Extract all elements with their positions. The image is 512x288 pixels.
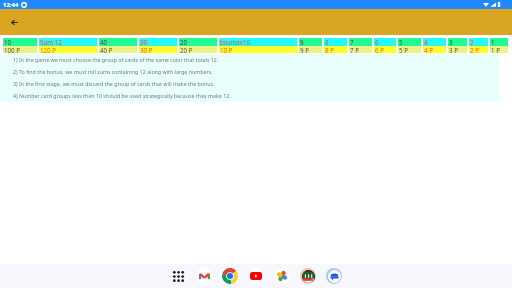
staticText: 4 P [424, 46, 433, 53]
staticText: 7 [350, 38, 354, 46]
staticText: 10 P [220, 46, 233, 53]
staticText: 2 P [470, 46, 479, 53]
staticText: 4 [424, 38, 428, 46]
button[interactable]: 4 [423, 38, 446, 53]
button[interactable]: Chrome [222, 268, 238, 284]
staticText: 5 [399, 38, 403, 46]
staticText: Sum 12 [40, 38, 62, 46]
button[interactable]: Account [300, 268, 316, 284]
staticText: 20 [180, 38, 188, 46]
button[interactable]: 8 [324, 38, 347, 53]
staticText: 4) Number card groups less than 10 shoul… [13, 92, 231, 99]
button[interactable]: Messages [326, 268, 342, 284]
button[interactable]: 30 [139, 38, 177, 53]
staticText: 10 [4, 38, 12, 46]
staticText: 3) In the first stage, we must discard t… [13, 80, 215, 87]
staticText: 30 [140, 38, 148, 46]
staticText: 40 P [100, 46, 113, 53]
button[interactable]: 7 [349, 38, 372, 53]
button[interactable]: Sum 12 [39, 38, 97, 53]
button[interactable]: YouTube [248, 268, 264, 284]
staticText: 3 P [449, 46, 458, 53]
button[interactable]: 20 [179, 38, 217, 53]
staticText: 40 [100, 38, 108, 46]
staticText: 1) In the game we must choose the group … [13, 56, 219, 63]
button[interactable]: Back [5, 13, 23, 31]
staticText: 7 P [350, 46, 359, 53]
button[interactable]: Photos [274, 268, 290, 284]
staticText: 5 P [399, 46, 408, 53]
button[interactable]: 5 [398, 38, 421, 53]
staticText: 20 P [180, 46, 193, 53]
staticText: 12:44 [3, 1, 19, 9]
staticText: 30 P [140, 46, 153, 53]
button[interactable]: Gmail [196, 268, 212, 284]
staticText: 1 P [491, 46, 500, 53]
staticText: 6 P [375, 46, 384, 53]
staticText: 120 P [40, 46, 56, 53]
button[interactable]: 9 [299, 38, 322, 53]
button[interactable]: 6 [374, 38, 396, 53]
staticText: 6 [375, 38, 379, 46]
staticText: 9 [300, 38, 304, 46]
staticText: 9 P [300, 46, 309, 53]
button[interactable]: 3 [448, 38, 467, 53]
staticText: 2 [470, 38, 474, 46]
button[interactable]: 1 [490, 38, 508, 53]
button[interactable]: 10 [3, 38, 37, 53]
button[interactable]: 40 [99, 38, 137, 53]
button[interactable]: boymax10 [219, 38, 297, 53]
staticText: 2) To find the bonus, we must roll sums … [13, 68, 213, 75]
staticText: 8 [325, 38, 329, 46]
button[interactable]: 2 [469, 38, 488, 53]
staticText: boymax10 [220, 38, 251, 46]
staticText: 3 [449, 38, 453, 46]
staticText: 1 [491, 38, 495, 46]
button[interactable]: All apps [170, 268, 186, 284]
staticText: 100 P [4, 46, 20, 53]
staticText: 8 P [325, 46, 334, 53]
